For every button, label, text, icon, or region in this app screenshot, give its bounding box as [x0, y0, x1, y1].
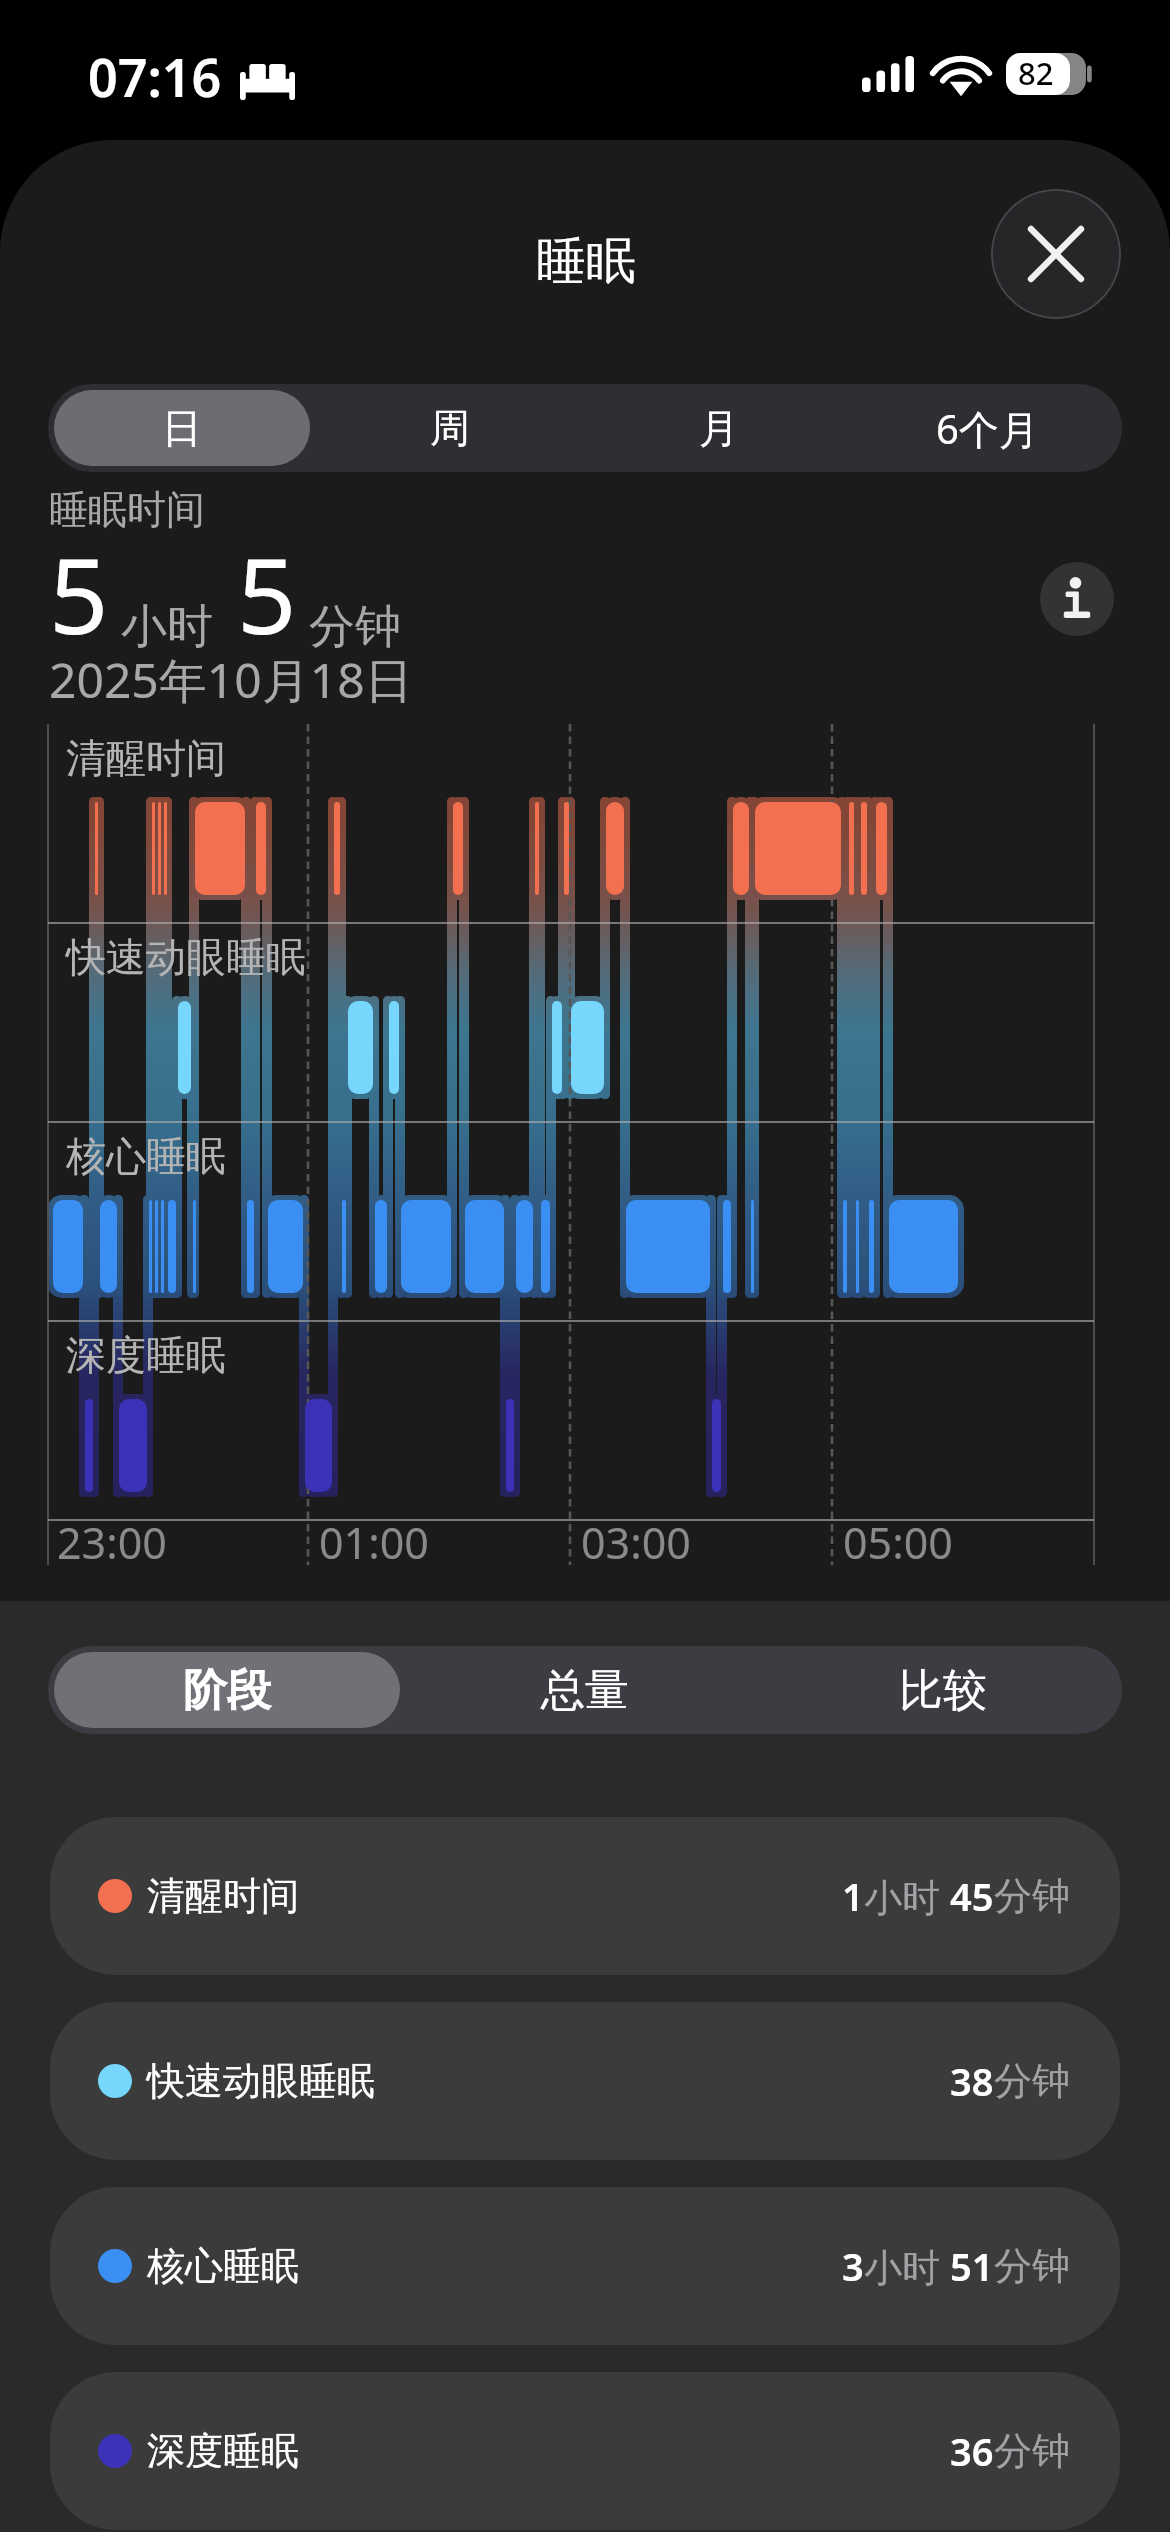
button[interactable]: 总量: [412, 1652, 758, 1728]
staticText: 周: [430, 403, 470, 453]
staticText: 23:00: [57, 1513, 167, 1572]
staticText: 清醒时间: [66, 733, 226, 783]
staticText: 1: [842, 1870, 864, 1922]
staticText: 小时: [864, 1870, 950, 1922]
staticText: 睡眠: [536, 230, 636, 293]
staticText: 深度睡眠: [147, 2427, 299, 2475]
button[interactable]: 深度睡眠: [50, 2372, 1120, 2530]
button[interactable]: 清醒时间: [50, 1817, 1120, 1975]
staticText: 分钟: [994, 2057, 1070, 2105]
staticText: 日: [162, 403, 202, 453]
staticText: 45: [950, 1870, 994, 1922]
staticText: 核心睡眠: [66, 1131, 226, 1181]
staticText: 快速动眼睡眠: [66, 932, 306, 982]
button[interactable]: 核心睡眠: [50, 2187, 1120, 2345]
button[interactable]: 关闭: [991, 189, 1121, 319]
button[interactable]: 信息: [1040, 562, 1114, 636]
staticText: 月: [699, 403, 739, 453]
staticText: 快速动眼睡眠: [147, 2057, 375, 2105]
staticText: 5: [49, 523, 109, 665]
staticText: 2025年10月18日: [49, 647, 413, 713]
button[interactable]: 快速动眼睡眠: [50, 2002, 1120, 2160]
staticText: 51: [950, 2240, 994, 2292]
staticText: 分钟: [309, 598, 401, 656]
staticText: 03:00: [581, 1513, 691, 1572]
staticText: 比较: [899, 1663, 987, 1718]
staticText: 分钟: [994, 2242, 1070, 2290]
staticText: 阶段: [183, 1663, 271, 1718]
staticText: 小时: [121, 598, 213, 656]
staticText: 5: [237, 523, 297, 665]
staticText: 小时: [864, 2240, 950, 2292]
staticText: 分钟: [994, 2427, 1070, 2475]
staticText: 睡眠时间: [49, 485, 205, 534]
staticText: 6个月: [936, 401, 1039, 456]
staticText: 3: [842, 2240, 864, 2292]
button[interactable]: 日: [54, 390, 310, 466]
staticText: 38: [950, 2055, 994, 2107]
staticText: 36: [950, 2425, 994, 2477]
button[interactable]: 周: [322, 390, 578, 466]
button[interactable]: 6个月: [859, 390, 1116, 466]
button[interactable]: 月: [590, 390, 847, 466]
staticText: 分钟: [994, 1872, 1070, 1920]
button[interactable]: 比较: [770, 1652, 1116, 1728]
staticText: 总量: [541, 1663, 629, 1718]
staticText: 深度睡眠: [66, 1330, 226, 1380]
staticText: 07:16: [88, 41, 222, 112]
staticText: 05:00: [843, 1513, 953, 1572]
staticText: 01:00: [319, 1513, 429, 1572]
button[interactable]: 阶段: [54, 1652, 400, 1728]
staticText: 82: [1018, 52, 1054, 94]
staticText: 核心睡眠: [147, 2242, 299, 2290]
staticText: 清醒时间: [147, 1872, 299, 1920]
